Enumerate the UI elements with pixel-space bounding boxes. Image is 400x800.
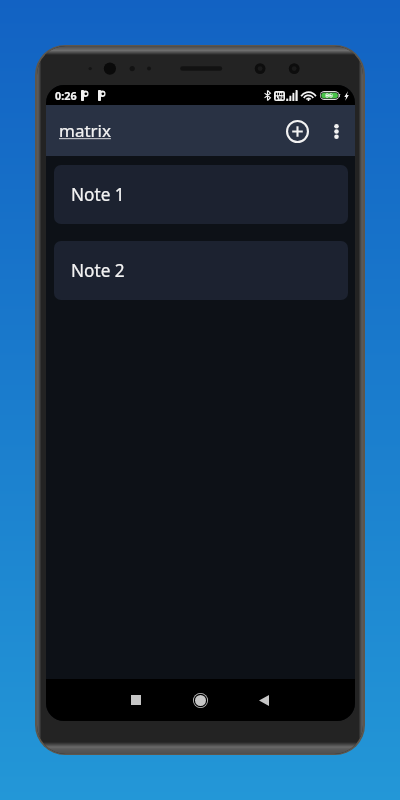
button[interactable]: More options [319,114,353,148]
button[interactable]: Add note [279,113,315,149]
staticText: matrix [59,119,116,142]
staticText: 0:26 [55,88,77,103]
button[interactable]: Back [243,679,285,721]
staticText: Note 1 [71,183,125,206]
button[interactable]: Note 2 [54,241,348,300]
button[interactable]: Note 1 [54,165,348,224]
button[interactable]: Recent apps [115,679,157,721]
button[interactable]: Home [179,679,221,721]
staticText: Note 2 [71,259,125,282]
